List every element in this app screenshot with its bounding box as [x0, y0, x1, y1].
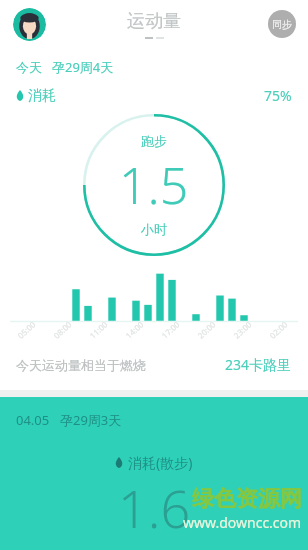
- staticText: 11:00: [87, 318, 110, 341]
- button[interactable]: 今天运动量相当于燃烧: [16, 355, 292, 374]
- staticText: 小时: [141, 221, 167, 237]
- staticText: 08:00: [51, 318, 74, 341]
- staticText: 1.5: [119, 151, 189, 219]
- staticText: 1.6: [118, 472, 191, 543]
- staticText: 孕29周4天: [52, 58, 114, 76]
- staticText: 孕29周3天: [60, 411, 122, 429]
- staticText: 14:00: [123, 318, 146, 341]
- staticText: 04.05: [16, 411, 50, 429]
- staticText: 20:00: [195, 318, 218, 341]
- staticText: 今天: [16, 59, 42, 75]
- staticText: 17:00: [159, 318, 182, 341]
- staticText: 05:00: [15, 318, 38, 341]
- staticText: 今天运动量相当于燃烧: [16, 357, 146, 373]
- staticText: 23:00: [231, 318, 254, 341]
- button[interactable]: 同步: [268, 10, 296, 38]
- staticText: 75%: [264, 86, 292, 105]
- staticText: www.downcc.com: [183, 513, 302, 532]
- staticText: 运动量: [127, 10, 181, 33]
- button[interactable]: Profile: [13, 8, 46, 41]
- staticText: 同步: [272, 18, 292, 31]
- staticText: 消耗(散步): [128, 453, 193, 472]
- staticText: 234卡路里: [225, 355, 292, 374]
- staticText: 跑步: [141, 133, 167, 149]
- staticText: 绿色资源网: [192, 485, 302, 513]
- staticText: 02:00: [267, 318, 290, 341]
- staticText: 消耗: [28, 87, 56, 105]
